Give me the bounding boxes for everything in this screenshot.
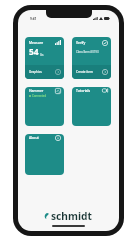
staticText: 54 [29,46,39,57]
staticText: Connected [32,94,47,98]
other: About [55,135,61,141]
staticText: Verify [76,40,86,45]
other: Tutorial videos [102,88,108,93]
staticText: Class Item #0193 [76,50,99,54]
staticText: schmidt [51,209,92,223]
other: Signal [55,40,61,45]
staticText: lbs [40,53,44,57]
button[interactable]: Tutorials [72,87,111,126]
button[interactable]: Graphics [25,65,64,79]
staticText: Create item [76,70,93,74]
staticText: Tutorials [76,88,91,93]
staticText: Hammer [29,88,44,93]
staticText: 9:41 [30,17,37,21]
staticText: About [29,135,39,140]
other: Device [55,88,61,94]
staticText: Measure [29,40,44,45]
other: Create item [102,69,108,75]
button[interactable]: Verify [72,37,111,79]
button[interactable]: About [25,134,64,175]
button[interactable]: Hammer [25,87,64,126]
other: Graphics [55,69,61,75]
button[interactable]: Create item [72,65,111,79]
other: Verified [102,40,108,46]
staticText: Graphics [29,70,42,74]
button[interactable]: Measure [25,37,64,79]
